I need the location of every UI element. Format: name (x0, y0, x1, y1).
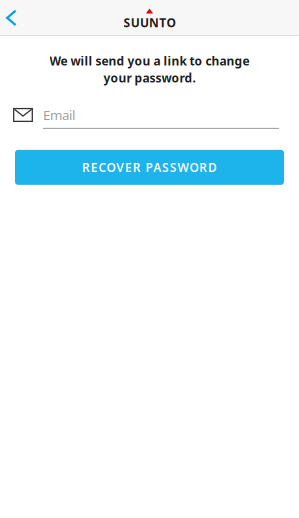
button[interactable]: RECOVER PASSWORD (15, 150, 284, 185)
button[interactable]: Back (0, 0, 34, 36)
staticText: SUUNTO (123, 14, 175, 30)
staticText: Email (43, 106, 75, 124)
staticText: RECOVER PASSWORD (82, 159, 217, 175)
staticText: your password. (103, 70, 195, 86)
staticText: We will send you a link to change (49, 53, 249, 69)
